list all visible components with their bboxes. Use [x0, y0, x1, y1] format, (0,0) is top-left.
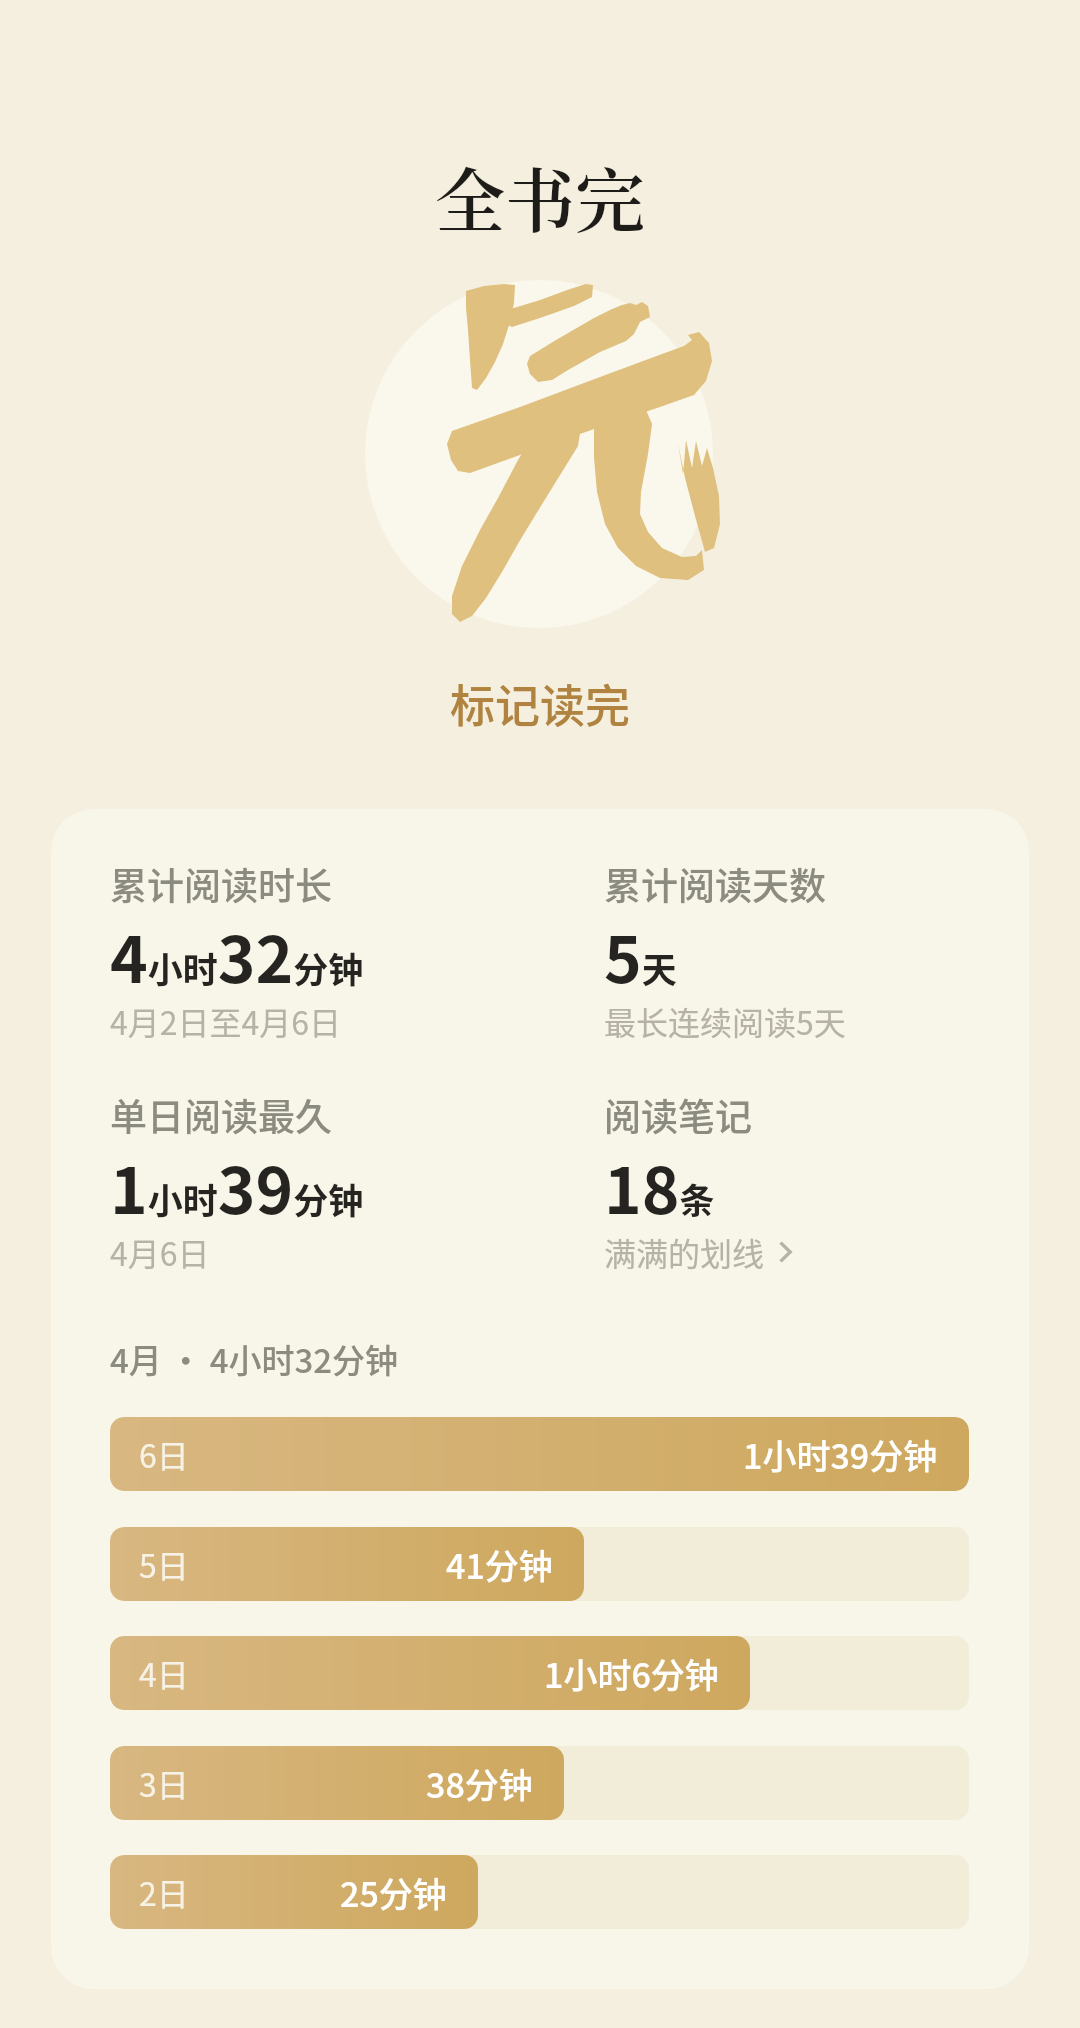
- staticText: 1小时6分钟: [544, 1649, 719, 1698]
- button[interactable]: 累计阅读天数: [604, 857, 974, 1057]
- staticText: 25分钟: [340, 1868, 447, 1917]
- staticText: 41分钟: [446, 1540, 553, 1589]
- staticText: 全书完: [435, 146, 645, 247]
- staticText: 4月 · 4小时32分钟: [110, 1335, 399, 1383]
- staticText: 阅读笔记: [604, 1088, 752, 1142]
- staticText: 1小时39分钟: [110, 1140, 364, 1233]
- button[interactable]: 6日: [110, 1417, 969, 1491]
- staticText: 累计阅读时长: [110, 857, 332, 911]
- staticText: 4月2日至4月6日: [110, 998, 342, 1044]
- button[interactable]: 2日: [110, 1855, 969, 1929]
- staticText: 最长连续阅读5天: [604, 998, 846, 1044]
- staticText: 5日: [139, 1541, 189, 1587]
- staticText: 累计阅读天数: [604, 857, 826, 911]
- button[interactable]: 4日: [110, 1636, 969, 1710]
- staticText: 2日: [139, 1869, 189, 1915]
- other: 查看划线: [772, 1239, 798, 1265]
- staticText: 满满的划线: [604, 1229, 765, 1275]
- staticText: 6日: [139, 1431, 189, 1477]
- staticText: 38分钟: [426, 1759, 533, 1808]
- staticText: 标记读完: [450, 671, 631, 736]
- button[interactable]: 标记读完: [418, 659, 663, 748]
- button[interactable]: 全书完印章: [365, 280, 713, 628]
- staticText: 单日阅读最久: [110, 1088, 332, 1142]
- staticText: 1小时39分钟: [743, 1430, 938, 1479]
- staticText: 4小时32分钟: [110, 909, 364, 1002]
- staticText: 4日: [139, 1650, 189, 1696]
- button[interactable]: 阅读笔记: [604, 1088, 974, 1288]
- button[interactable]: 3日: [110, 1746, 969, 1820]
- staticText: 3日: [139, 1760, 189, 1806]
- button[interactable]: 单日阅读最久: [110, 1088, 580, 1288]
- button[interactable]: 5日: [110, 1527, 969, 1601]
- staticText: 4月6日: [110, 1229, 210, 1275]
- staticText: 18条: [604, 1140, 715, 1233]
- staticText: 5天: [604, 909, 677, 1002]
- button[interactable]: 累计阅读时长: [110, 857, 580, 1057]
